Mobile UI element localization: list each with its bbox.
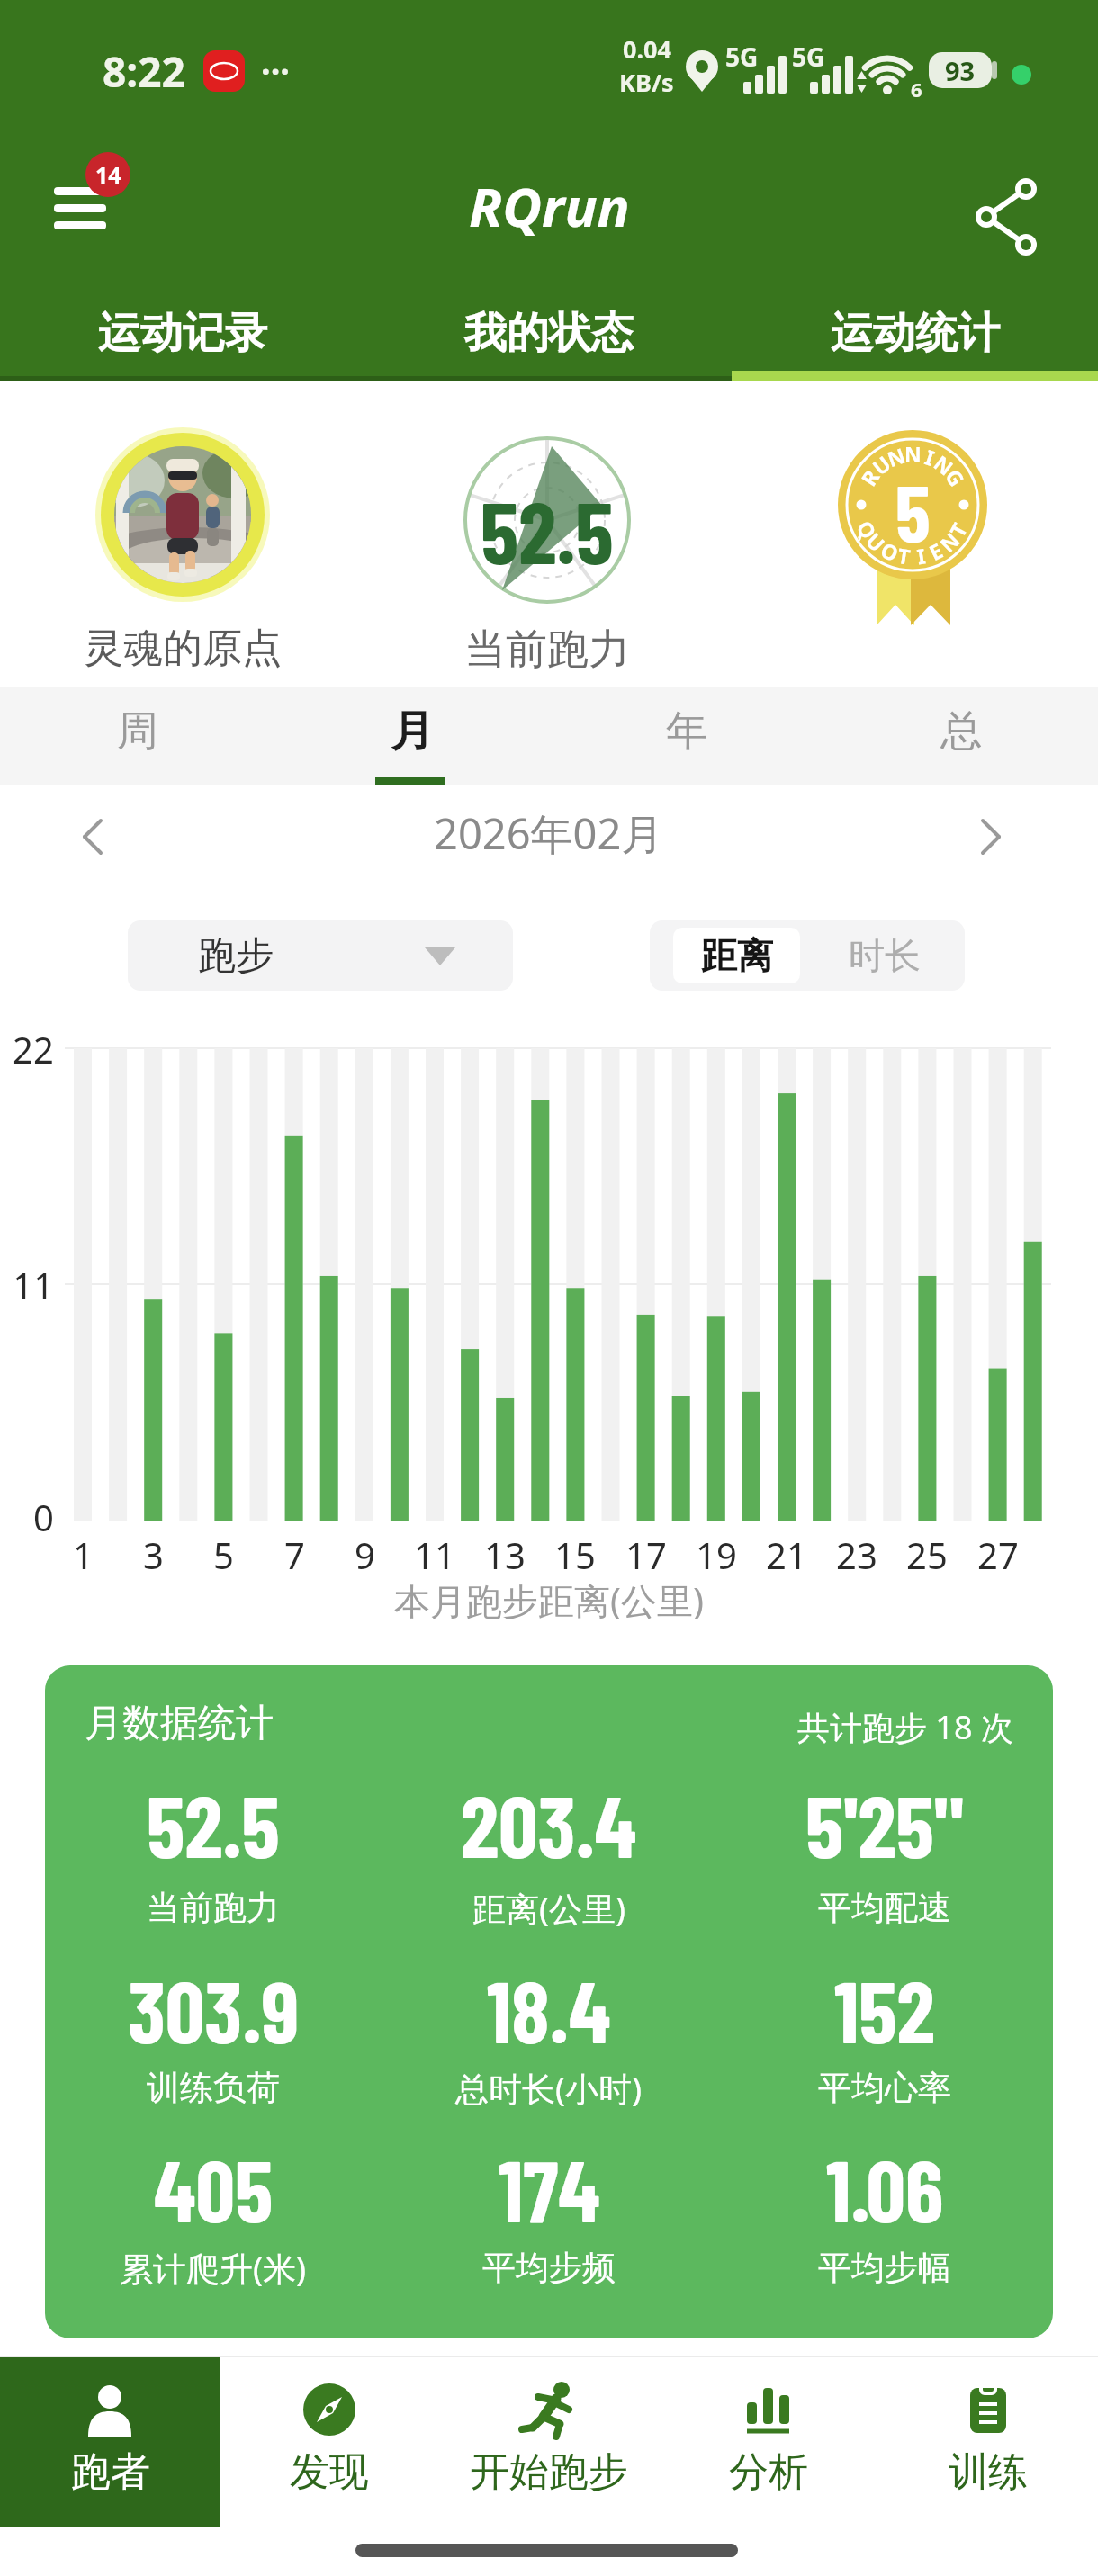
staticText: O bbox=[877, 535, 904, 567]
button[interactable]: 周 bbox=[0, 687, 274, 776]
staticText: 平均配速 bbox=[818, 1887, 951, 1929]
staticText: 平均步频 bbox=[482, 2247, 616, 2289]
staticText: 5G bbox=[792, 40, 825, 74]
staticText: 52.5 bbox=[481, 478, 614, 581]
staticText: 运动统计 bbox=[831, 307, 1000, 360]
staticText: 27 bbox=[977, 1530, 1019, 1574]
staticText: 周 bbox=[117, 705, 158, 758]
staticText: 21 bbox=[766, 1530, 807, 1574]
staticText: 17 bbox=[625, 1530, 667, 1574]
staticText: 3 bbox=[143, 1530, 164, 1574]
staticText: N bbox=[883, 441, 908, 472]
staticText: 月 bbox=[391, 705, 434, 758]
button[interactable] bbox=[970, 176, 1051, 257]
button[interactable] bbox=[79, 819, 106, 855]
staticText: 总时长(小时) bbox=[455, 2065, 643, 2111]
staticText: 7 bbox=[284, 1530, 305, 1574]
staticText: 23 bbox=[836, 1530, 877, 1574]
staticText: 25 bbox=[906, 1530, 948, 1574]
staticText: 5 bbox=[895, 463, 931, 546]
staticText: 405 bbox=[154, 2136, 274, 2239]
staticText: 8:22 bbox=[103, 43, 185, 99]
button[interactable] bbox=[977, 819, 1004, 855]
staticText: 52.5 bbox=[147, 1772, 280, 1875]
staticText: 14 bbox=[95, 159, 121, 190]
staticText: 5G bbox=[725, 40, 759, 74]
staticText: 平均步幅 bbox=[818, 2247, 951, 2289]
staticText: Q bbox=[852, 516, 884, 543]
staticText: R bbox=[854, 463, 885, 490]
staticText: 0 bbox=[33, 1493, 54, 1539]
button[interactable]: 运动记录 bbox=[0, 297, 365, 369]
staticText: U bbox=[861, 526, 892, 557]
staticText: ··· bbox=[261, 47, 291, 94]
button[interactable] bbox=[94, 426, 271, 603]
staticText: 跑者 bbox=[71, 2447, 150, 2494]
staticText: 发现 bbox=[290, 2447, 369, 2494]
staticText: 174 bbox=[499, 2136, 600, 2239]
button[interactable]: 总 bbox=[823, 687, 1098, 776]
staticText: 15 bbox=[554, 1530, 596, 1574]
staticText: 11 bbox=[414, 1530, 455, 1574]
button[interactable]: 距离 bbox=[673, 928, 800, 983]
staticText: N bbox=[933, 526, 964, 557]
button[interactable]: 我的状态 bbox=[365, 297, 732, 369]
staticText: 训练 bbox=[949, 2447, 1028, 2494]
staticText: 22 bbox=[13, 1025, 54, 1072]
button[interactable]: 开始跑步 bbox=[439, 2357, 659, 2527]
button[interactable]: 发现 bbox=[220, 2357, 439, 2527]
staticText: I bbox=[922, 442, 938, 470]
staticText: 11 bbox=[13, 1261, 54, 1307]
staticText: 5 bbox=[213, 1530, 234, 1574]
staticText: 1.06 bbox=[826, 2136, 944, 2239]
staticText: U bbox=[866, 449, 896, 480]
staticText: 本月跑步距离(公里) bbox=[394, 1575, 704, 1619]
button[interactable]: 14 bbox=[36, 144, 144, 243]
button[interactable]: 月 bbox=[274, 687, 549, 776]
staticText: 训练负荷 bbox=[147, 2067, 280, 2109]
staticText: 93 bbox=[945, 53, 976, 88]
staticText: 0.04 bbox=[623, 32, 671, 66]
staticText: 1 bbox=[73, 1530, 94, 1574]
button[interactable]: 分析 bbox=[659, 2357, 878, 2527]
staticText: 18.4 bbox=[487, 1957, 611, 2060]
staticText: 时长 bbox=[849, 933, 921, 978]
staticText: 203.4 bbox=[461, 1772, 637, 1875]
staticText: 运动记录 bbox=[98, 307, 267, 360]
staticText: 距离 bbox=[701, 933, 773, 978]
staticText: 分析 bbox=[729, 2447, 808, 2494]
staticText: 2026年02月 bbox=[434, 804, 664, 862]
staticText: 我的状态 bbox=[464, 307, 634, 360]
staticText: 9 bbox=[355, 1530, 375, 1574]
button[interactable]: 跑步 bbox=[128, 920, 513, 991]
staticText: 19 bbox=[696, 1530, 737, 1574]
staticText: 灵魂的原点 bbox=[84, 624, 282, 670]
button[interactable]: 运动统计 bbox=[732, 297, 1098, 369]
staticText: 距离(公里) bbox=[472, 1885, 626, 1931]
staticText: 平均心率 bbox=[818, 2067, 951, 2109]
staticText: RQrun bbox=[469, 169, 630, 241]
staticText: 13 bbox=[484, 1530, 526, 1574]
staticText: 6 bbox=[911, 76, 922, 103]
staticText: 月数据统计 bbox=[85, 1700, 274, 1746]
staticText: 共计跑步 18 次 bbox=[797, 1705, 1013, 1745]
staticText: 跑步 bbox=[198, 932, 274, 980]
staticText: G bbox=[941, 463, 972, 491]
button[interactable]: 时长 bbox=[821, 928, 948, 983]
staticText: T bbox=[943, 517, 973, 541]
staticText: N bbox=[904, 440, 922, 467]
button[interactable]: 训练 bbox=[878, 2357, 1098, 2527]
button[interactable]: 跑者 bbox=[0, 2357, 220, 2527]
staticText: 5'25" bbox=[805, 1772, 964, 1875]
staticText: 总 bbox=[940, 705, 982, 758]
staticText: 152 bbox=[834, 1957, 935, 2060]
staticText: E bbox=[924, 536, 947, 565]
button[interactable]: 年 bbox=[549, 687, 823, 776]
staticText: 开始跑步 bbox=[470, 2447, 628, 2494]
staticText: N bbox=[929, 449, 959, 480]
staticText: 当前跑力 bbox=[464, 624, 630, 670]
staticText: 303.9 bbox=[128, 1957, 300, 2060]
staticText: 累计爬升(米) bbox=[120, 2245, 307, 2291]
staticText: 当前跑力 bbox=[147, 1887, 280, 1929]
staticText: KB/s bbox=[619, 66, 674, 99]
